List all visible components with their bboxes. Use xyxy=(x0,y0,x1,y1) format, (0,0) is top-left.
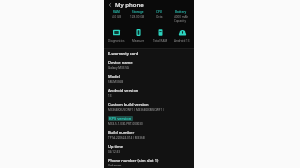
button[interactable]: Measure xyxy=(127,27,149,44)
staticText: M336BXXU5CWF1 / M336BOXM5CWF1 / M336BXXU… xyxy=(108,108,190,112)
staticText: My phone xyxy=(115,1,144,9)
staticText: TP1A.220624.014 / M336B xyxy=(108,136,145,140)
staticText: E-warranty card xyxy=(108,51,139,56)
staticText: Battery xyxy=(175,10,187,14)
staticText: M33-5.1.030-PRT-000030 xyxy=(108,122,143,126)
staticText: 4.0 GB xyxy=(112,15,122,19)
staticText: 04:12:33 xyxy=(108,150,120,154)
staticText: CPU xyxy=(156,10,163,14)
staticText: KPS version xyxy=(109,116,132,121)
staticText: Up time xyxy=(108,144,124,149)
button[interactable]: Phone number (sim slot 1) xyxy=(104,156,194,168)
button[interactable]: KPS version xyxy=(104,114,194,128)
staticText: Android 13 xyxy=(174,39,190,43)
staticText: 128.00 GB xyxy=(130,15,145,19)
staticText: Diagnostics xyxy=(108,39,125,43)
button[interactable]: E-warranty card xyxy=(104,49,194,58)
staticText: Total RAM xyxy=(153,39,168,43)
staticText: Model xyxy=(108,74,120,79)
button[interactable]: Model xyxy=(104,72,194,86)
staticText: Unknown xyxy=(108,164,122,166)
staticText: Measure xyxy=(132,39,145,43)
staticText: Storage xyxy=(132,10,144,14)
button[interactable]: Back xyxy=(106,1,114,9)
button[interactable]: Android version xyxy=(104,86,194,100)
button[interactable]: Custom build version xyxy=(104,100,194,114)
button[interactable]: Diagnostics xyxy=(105,27,127,44)
button[interactable]: CPU xyxy=(148,10,170,19)
staticText: Octa xyxy=(156,15,163,19)
staticText: 13 xyxy=(108,94,112,98)
button[interactable]: RAM xyxy=(106,10,127,19)
staticText: Phone number (sim slot 1) xyxy=(108,158,159,163)
button[interactable]: Storage xyxy=(127,10,148,19)
button[interactable]: Battery xyxy=(170,10,192,23)
staticText: Android version xyxy=(108,88,139,93)
staticText: SM-M336B xyxy=(108,80,124,84)
staticText: Device name xyxy=(108,60,133,65)
staticText: Custom build version xyxy=(108,102,149,107)
button[interactable]: Total RAM xyxy=(149,27,171,44)
staticText: 4000 mAh Capacity xyxy=(174,15,189,23)
button[interactable]: Android 13 xyxy=(171,27,193,44)
staticText: Build number xyxy=(108,130,135,135)
button[interactable]: Build number xyxy=(104,128,194,142)
button[interactable]: Device name xyxy=(104,58,194,72)
staticText: Galaxy M33 5G xyxy=(108,66,130,70)
button[interactable]: Up time xyxy=(104,142,194,156)
staticText: RAM xyxy=(113,10,120,14)
